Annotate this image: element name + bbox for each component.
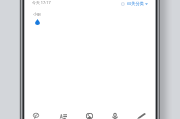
- staticText: 今天 17:17: [32, 0, 51, 5]
- button[interactable]: Chat: [23, 105, 49, 119]
- button[interactable]: Image: [76, 105, 102, 119]
- button[interactable]: Edit: [128, 105, 154, 119]
- staticText: 小明: [33, 12, 41, 17]
- staticText: 已关分类: [127, 1, 144, 6]
- button[interactable]: 已关分类: [121, 1, 148, 6]
- button[interactable]: Voice: [102, 105, 128, 119]
- button[interactable]: Text message: [50, 105, 76, 119]
